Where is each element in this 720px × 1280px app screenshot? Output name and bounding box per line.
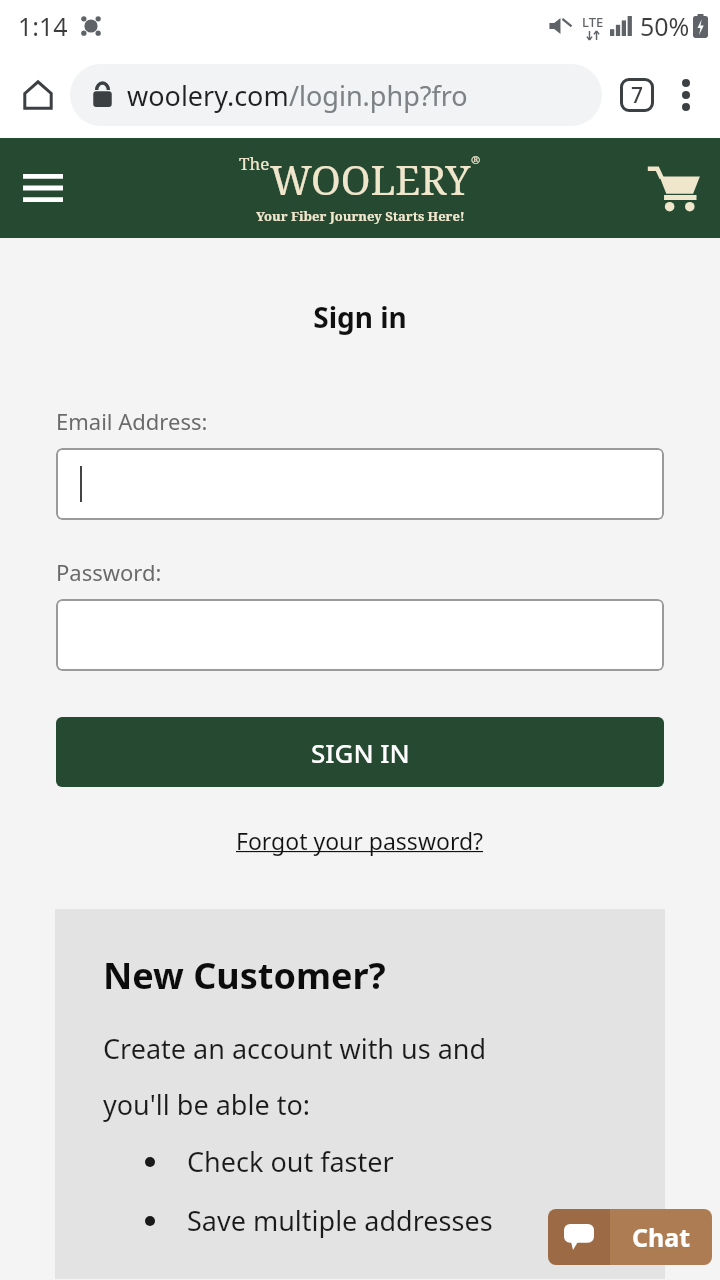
staticText: LTE	[582, 13, 604, 31]
staticText: Your Fiber Journey Starts Here!	[256, 207, 465, 225]
staticText: Save multiple addresses	[187, 1202, 493, 1239]
button[interactable]: Home	[14, 71, 62, 119]
button[interactable]	[56, 599, 664, 671]
staticText: Sign in	[0, 298, 720, 336]
staticText: SIGN IN	[311, 735, 410, 770]
button[interactable]: More options	[662, 71, 710, 119]
staticText: woolery.com	[127, 77, 289, 114]
button[interactable]: Chat	[548, 1209, 712, 1265]
button[interactable]	[56, 448, 664, 520]
staticText: Forgot your password?	[236, 825, 484, 856]
staticText: ®	[471, 152, 481, 167]
button[interactable]: Shopping cart	[640, 155, 706, 221]
staticText: /login.php?fro	[289, 77, 468, 114]
button[interactable]: woolery.com	[70, 64, 602, 126]
staticText: Email Address:	[56, 406, 208, 436]
staticText: WOOLERY	[270, 152, 471, 206]
button[interactable]: SIGN IN	[56, 717, 664, 787]
button[interactable]: Forgot your password?	[0, 825, 720, 856]
staticText: Create an account with us and	[103, 1030, 487, 1067]
staticText: you'll be able to:	[103, 1086, 310, 1123]
button[interactable]: Tabs, 7 open	[612, 70, 662, 120]
staticText: Chat	[632, 1220, 691, 1254]
button[interactable]: Menu	[12, 157, 74, 219]
staticText: 7	[631, 81, 644, 110]
staticText: Password:	[56, 557, 162, 587]
staticText: 1:14	[18, 9, 68, 43]
staticText: 50%	[640, 9, 690, 43]
staticText: The	[239, 152, 270, 175]
staticText: New Customer?	[103, 951, 386, 1000]
staticText: Check out faster	[187, 1143, 394, 1180]
